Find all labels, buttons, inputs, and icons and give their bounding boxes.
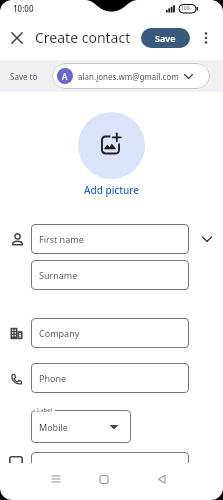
button[interactable]: Surname	[31, 260, 189, 290]
button[interactable]	[78, 112, 145, 179]
button[interactable]	[46, 469, 66, 489]
button[interactable]	[152, 469, 172, 489]
button[interactable]	[94, 469, 114, 489]
button[interactable]	[6, 26, 30, 50]
staticText: alan.jones.wm@gmail.com	[78, 71, 179, 82]
staticText: Create contact	[35, 28, 131, 47]
staticText: 10:00	[13, 3, 34, 14]
staticText: Save	[155, 32, 176, 44]
staticText: 100	[181, 5, 190, 12]
staticText: Save to	[10, 71, 38, 82]
button[interactable]	[196, 228, 218, 250]
button[interactable]: Company	[31, 318, 189, 348]
staticText: First name	[39, 233, 84, 245]
staticText: A	[62, 71, 68, 82]
button[interactable]: A	[52, 63, 210, 89]
staticText: Surname	[39, 269, 78, 281]
button[interactable]: Add picture	[0, 183, 223, 197]
button[interactable]: Phone	[31, 363, 189, 393]
staticText: Company	[39, 327, 80, 339]
button[interactable]: Mobile	[31, 410, 131, 443]
staticText: Label	[37, 406, 53, 414]
staticText: Mobile	[39, 421, 68, 433]
button[interactable]	[198, 26, 214, 50]
button[interactable]: First name	[31, 224, 189, 254]
staticText: Phone	[39, 372, 67, 384]
button[interactable]: Save	[141, 28, 190, 48]
